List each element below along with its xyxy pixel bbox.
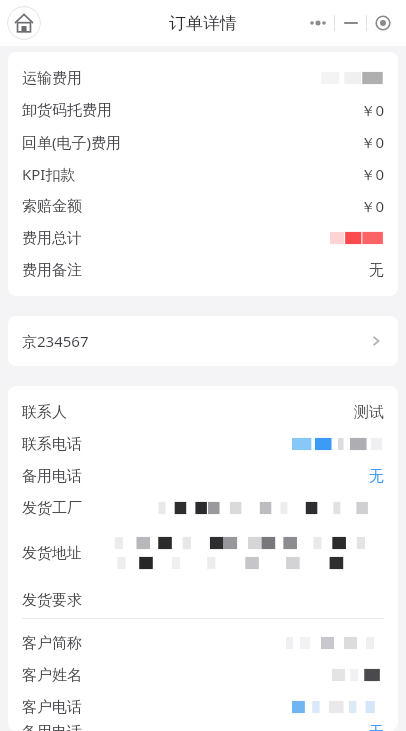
staticText: 订单详情 [169, 13, 237, 34]
staticText: ￥0 [360, 132, 384, 152]
button[interactable]: Home [7, 6, 41, 40]
staticText: 备用电话 [22, 467, 82, 486]
staticText: 无 [369, 467, 384, 486]
staticText: ￥0 [360, 100, 384, 120]
staticText: 联系人 [22, 403, 67, 422]
staticText: 卸货码托费用 [22, 101, 112, 120]
staticText: 联系电话 [22, 435, 82, 454]
staticText: 发货要求 [22, 591, 82, 610]
staticText: 费用备注 [22, 261, 82, 280]
staticText: 发货工厂 [22, 499, 82, 518]
staticText: 无 [369, 261, 384, 280]
button[interactable]: More [302, 8, 334, 38]
staticText: 回单(电子)费用 [22, 132, 122, 152]
staticText: 索赔金额 [22, 197, 82, 216]
staticText: 客户简称 [22, 634, 82, 653]
staticText: ￥0 [360, 164, 384, 184]
staticText: 发货地址 [22, 544, 82, 563]
staticText: 客户电话 [22, 698, 82, 717]
staticText: 无 [369, 723, 384, 731]
staticText: KPI扣款 [22, 164, 76, 184]
button[interactable]: 京234567 [8, 316, 398, 366]
staticText: 费用总计 [22, 229, 82, 248]
button[interactable]: Minimize [335, 8, 366, 38]
staticText: 备用电话 [22, 723, 82, 731]
staticText: ￥0 [360, 196, 384, 216]
staticText: 京234567 [22, 331, 89, 351]
button[interactable]: Close [367, 8, 398, 38]
staticText: 测试 [354, 403, 384, 422]
staticText: 客户姓名 [22, 666, 82, 685]
staticText: 运输费用 [22, 69, 82, 88]
